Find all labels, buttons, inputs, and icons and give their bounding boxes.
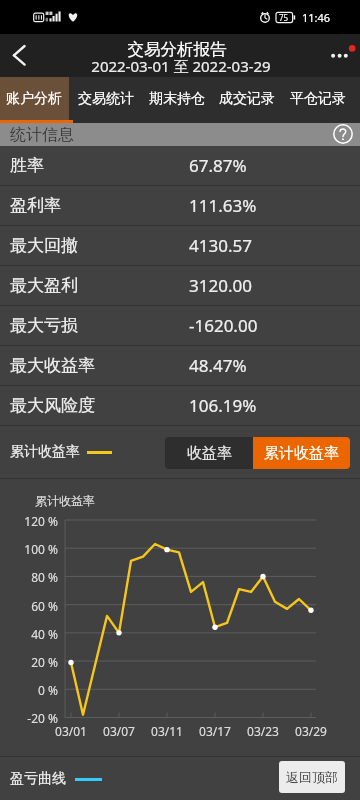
staticText: 0 % <box>0 682 58 698</box>
staticText: 48.47% <box>189 354 247 377</box>
button[interactable]: 成交记录 <box>212 77 282 120</box>
staticText: 期末持仓 <box>149 90 205 108</box>
staticText: 统计信息 <box>10 125 74 145</box>
staticText: 返回顶部 <box>286 769 338 785</box>
button[interactable]: 胜率 <box>0 146 360 185</box>
staticText: 账户分析 <box>6 90 62 108</box>
staticText: 03/29 <box>281 723 341 739</box>
staticText: 最大盈利 <box>10 275 78 296</box>
button[interactable]: 最大盈利 <box>0 266 360 305</box>
staticText: 平仓记录 <box>290 90 346 108</box>
button[interactable]: 累计收益率 <box>253 437 350 469</box>
staticText: 累计收益率 <box>264 444 339 463</box>
staticText: 120 % <box>0 513 58 529</box>
staticText: 累计收益率 <box>10 443 80 461</box>
staticText: 最大回撤 <box>10 235 78 256</box>
staticText: 20 % <box>0 654 58 670</box>
staticText: 3120.00 <box>189 274 252 297</box>
staticText: 交易分析报告 <box>0 39 357 60</box>
staticText: 最大风险度 <box>10 395 95 416</box>
staticText: 4130.57 <box>189 234 252 257</box>
button[interactable]: 收益率 <box>165 437 253 469</box>
button[interactable]: 返回顶部 <box>279 761 345 793</box>
staticText: 2022-03-01 至 2022-03-29 <box>1 56 360 76</box>
button[interactable]: 最大回撤 <box>0 226 360 265</box>
button[interactable]: 最大风险度 <box>0 386 360 425</box>
button[interactable]: More options <box>320 34 360 77</box>
staticText: 67.87% <box>189 154 247 177</box>
staticText: 111.63% <box>189 194 257 217</box>
staticText: 80 % <box>0 569 58 585</box>
staticText: 累计收益率 <box>35 493 95 508</box>
button[interactable]: 最大亏损 <box>0 306 360 345</box>
staticText: 收益率 <box>187 444 232 463</box>
button[interactable]: 最大收益率 <box>0 346 360 385</box>
button[interactable]: 盈利率 <box>0 186 360 225</box>
staticText: 成交记录 <box>219 90 275 108</box>
staticText: 盈亏曲线 <box>10 770 66 788</box>
button[interactable]: 账户分析 <box>0 77 69 120</box>
staticText: 03/23 <box>233 723 293 739</box>
staticText: 100 % <box>0 541 58 557</box>
staticText: 60 % <box>0 598 58 614</box>
staticText: 40 % <box>0 626 58 642</box>
staticText: 03/17 <box>185 723 245 739</box>
staticText: 最大收益率 <box>10 355 95 376</box>
button[interactable]: Help <box>333 124 353 144</box>
button[interactable]: 期末持仓 <box>142 77 212 120</box>
staticText: 03/11 <box>137 723 197 739</box>
staticText: 11:46 <box>302 10 331 25</box>
staticText: 盈利率 <box>10 195 61 216</box>
staticText: -20 % <box>0 710 58 726</box>
staticText: 106.19% <box>189 394 257 417</box>
staticText: 最大亏损 <box>10 315 78 336</box>
button[interactable]: 交易统计 <box>69 77 142 120</box>
staticText: 胜率 <box>10 155 44 176</box>
staticText: 交易统计 <box>78 90 134 108</box>
button[interactable]: 平仓记录 <box>282 77 354 120</box>
staticText: 75 <box>279 12 289 23</box>
staticText: 03/01 <box>41 723 101 739</box>
staticText: -1620.00 <box>189 314 258 337</box>
staticText: 03/07 <box>89 723 149 739</box>
button[interactable]: Back <box>0 34 40 77</box>
